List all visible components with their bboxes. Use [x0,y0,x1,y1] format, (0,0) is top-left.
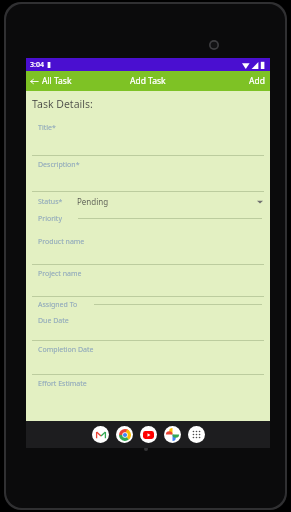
staticText: 3:04 [30,60,44,70]
staticText: Add [249,75,265,87]
staticText: Task Details: [32,97,93,111]
staticText: Project name [38,269,82,279]
staticText: Status* [38,197,63,207]
button[interactable]: Description* [26,156,270,191]
staticText: Pending [77,196,109,207]
button[interactable]: All apps [188,426,205,443]
staticText: Priority [38,214,62,224]
staticText: Effort Estimate [38,379,87,389]
staticText: Title* [38,123,56,133]
staticText: All Task [42,75,72,87]
staticText: Due Date [38,316,69,326]
button[interactable]: Google Photos [164,426,181,443]
button[interactable]: Product name [26,233,270,264]
staticText: Add Task [130,75,166,87]
button[interactable]: Add [244,71,270,91]
button[interactable]: Assigned To [26,297,270,312]
button[interactable]: Status* [26,192,270,211]
button[interactable]: Back to All Task [26,71,78,91]
staticText: Product name [38,237,85,247]
staticText: Completion Date [38,345,94,355]
button[interactable]: Title* [26,119,270,155]
button[interactable]: Priority [26,211,270,226]
staticText: Description* [38,160,80,170]
button[interactable]: Due Date [26,312,270,340]
button[interactable]: Chrome [116,426,133,443]
button[interactable]: Gmail [92,426,109,443]
button[interactable]: Completion Date [26,341,270,374]
button[interactable]: YouTube [140,426,157,443]
staticText: Assigned To [38,300,78,310]
button[interactable]: Project name [26,265,270,296]
button[interactable]: Effort Estimate [26,375,270,403]
